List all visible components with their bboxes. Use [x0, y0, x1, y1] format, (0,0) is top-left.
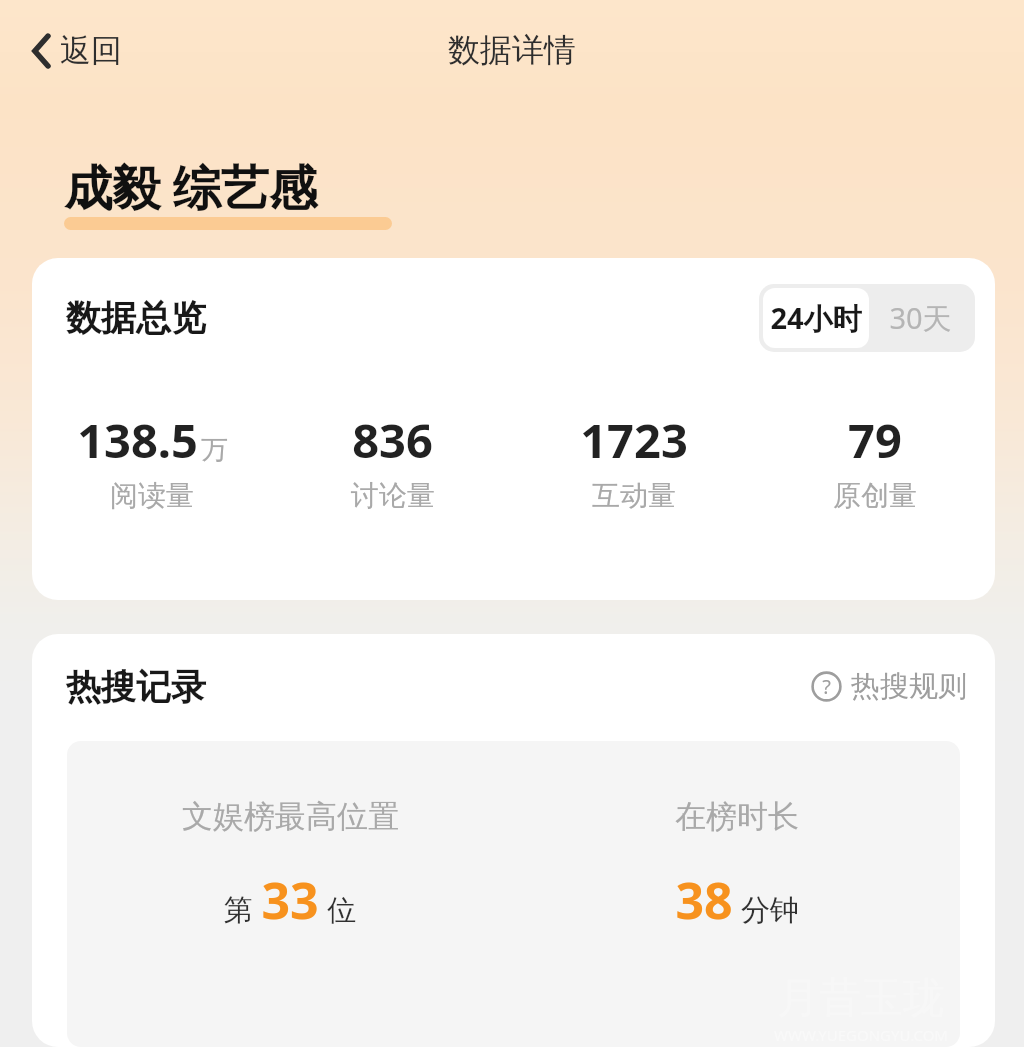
- staticText: 返回: [60, 31, 122, 70]
- staticText: 33: [261, 866, 319, 934]
- button[interactable]: 热搜规则 help: [811, 664, 967, 709]
- staticText: 1723: [580, 408, 688, 472]
- staticText: 30天: [889, 298, 952, 338]
- button[interactable]: 返回: [24, 23, 130, 78]
- staticText: 位: [327, 892, 356, 929]
- staticText: 24小时: [770, 298, 862, 338]
- button[interactable]: 1723: [513, 408, 754, 513]
- staticText: 38: [675, 866, 733, 934]
- button[interactable]: 在榜时长: [513, 797, 960, 934]
- staticText: 文娱榜最高位置: [182, 797, 399, 836]
- staticText: 79: [848, 408, 902, 472]
- staticText: 互动量: [592, 478, 676, 513]
- button[interactable]: 24小时: [763, 288, 869, 348]
- staticText: ?: [822, 673, 831, 700]
- staticText: 分钟: [741, 892, 799, 929]
- staticText: 138.5: [77, 408, 198, 472]
- staticText: 万: [201, 433, 228, 467]
- staticText: 阅读量: [110, 478, 194, 513]
- staticText: 热搜规则: [851, 668, 967, 705]
- button[interactable]: 79: [754, 408, 995, 513]
- button[interactable]: 836: [272, 408, 513, 513]
- staticText: 数据详情: [448, 30, 576, 70]
- staticText: 成毅 综艺感: [64, 154, 317, 220]
- button[interactable]: 文娱榜最高位置: [67, 797, 513, 934]
- staticText: 在榜时长: [675, 797, 799, 836]
- staticText: 数据总览: [66, 296, 206, 340]
- button[interactable]: 30天: [869, 288, 971, 348]
- staticText: 热搜记录: [66, 665, 206, 709]
- button[interactable]: 138.5: [32, 408, 272, 513]
- staticText: 原创量: [833, 478, 917, 513]
- staticText: 836: [352, 408, 433, 472]
- staticText: 第: [224, 892, 253, 929]
- staticText: 讨论量: [351, 478, 435, 513]
